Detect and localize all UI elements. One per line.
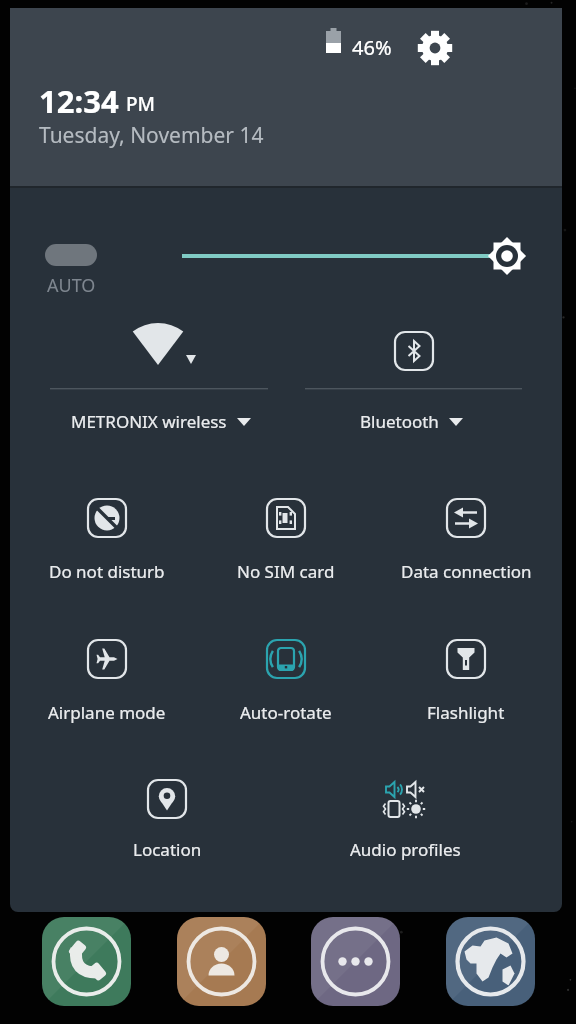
- staticText: Audio profiles: [350, 838, 461, 861]
- button[interactable]: [50, 323, 268, 435]
- staticText: AUTO: [47, 273, 96, 297]
- staticText: PM: [126, 91, 156, 117]
- staticText: Tuesday, November 14: [39, 121, 264, 150]
- staticText: Auto-rotate: [240, 701, 332, 724]
- button[interactable]: Do not disturb: [22, 490, 192, 585]
- button[interactable]: Flashlight: [381, 631, 551, 726]
- button[interactable]: [177, 917, 266, 1006]
- button[interactable]: [411, 24, 459, 72]
- staticText: Data connection: [401, 560, 532, 583]
- button[interactable]: [170, 234, 540, 278]
- staticText: 12:34: [39, 80, 119, 122]
- staticText: Location: [133, 838, 202, 861]
- button[interactable]: Audio profiles: [320, 771, 490, 863]
- staticText: Airplane mode: [48, 701, 166, 724]
- staticText: Flashlight: [427, 701, 505, 724]
- button[interactable]: Airplane mode: [22, 631, 192, 726]
- button[interactable]: [305, 323, 522, 435]
- button[interactable]: Data connection: [381, 490, 551, 585]
- button[interactable]: [446, 917, 535, 1006]
- button[interactable]: [42, 917, 131, 1006]
- button[interactable]: [311, 917, 400, 1006]
- button[interactable]: [45, 244, 97, 266]
- button[interactable]: Auto-rotate: [201, 631, 371, 726]
- staticText: Bluetooth: [360, 410, 439, 433]
- staticText: Do not disturb: [49, 560, 165, 583]
- staticText: 46%: [352, 34, 392, 58]
- staticText: No SIM card: [237, 560, 335, 583]
- staticText: METRONIX wireless: [71, 410, 227, 433]
- button[interactable]: Location: [82, 771, 252, 863]
- button[interactable]: No SIM card: [201, 490, 371, 585]
